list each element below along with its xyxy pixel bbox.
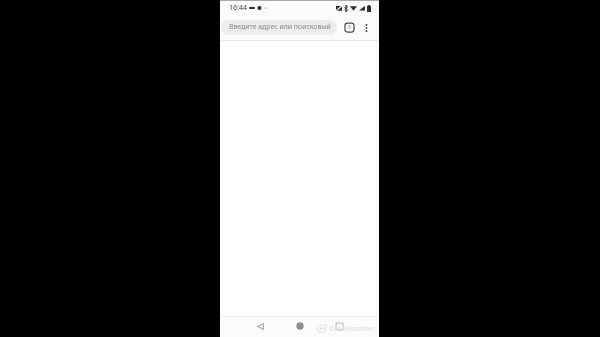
button[interactable]: Back xyxy=(240,316,280,336)
button[interactable]: Введите адрес или поисковый xyxy=(221,20,337,35)
button[interactable]: Switch tabs xyxy=(341,15,357,40)
staticText: DU Recorder xyxy=(329,323,375,333)
staticText: 8 xyxy=(348,24,351,31)
staticText: Введите адрес или поисковый xyxy=(229,22,331,31)
button[interactable]: More options xyxy=(360,15,373,40)
button[interactable]: Home xyxy=(280,316,319,336)
button[interactable]: Recent apps xyxy=(319,316,358,336)
staticText: 16:44 xyxy=(229,3,247,13)
